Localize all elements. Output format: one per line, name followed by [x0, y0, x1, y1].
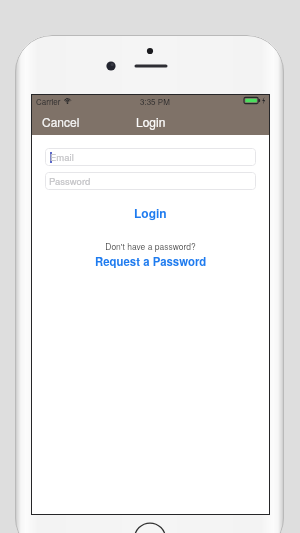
staticText: 3:35 PM [140, 96, 170, 107]
button[interactable]: Request a Password [45, 252, 256, 270]
staticText: Request a Password [95, 253, 207, 269]
button[interactable]: Login [45, 201, 256, 224]
staticText: Password [49, 174, 91, 188]
staticText: Cancel [42, 113, 80, 130]
staticText: Carrier [36, 96, 61, 107]
staticText: Login [136, 113, 166, 130]
button[interactable]: Password [45, 172, 256, 190]
button[interactable]: Email [45, 148, 256, 166]
staticText: Don't have a password? [105, 240, 196, 252]
staticText: Login [134, 204, 167, 221]
button[interactable]: Cancel [32, 110, 86, 135]
staticText: Email [50, 150, 74, 164]
